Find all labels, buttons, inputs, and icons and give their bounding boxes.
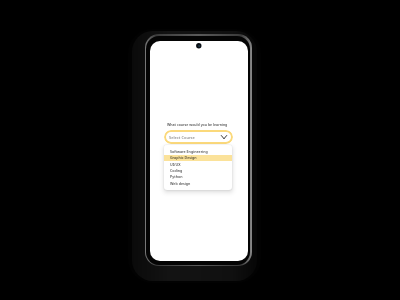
staticText: Software Engineering xyxy=(170,149,208,154)
button[interactable]: UI/UX xyxy=(164,162,232,169)
button[interactable]: Select Course xyxy=(164,130,233,144)
button[interactable]: Python xyxy=(164,174,232,181)
button[interactable]: Coding xyxy=(164,168,232,175)
button[interactable]: Graphic Design xyxy=(164,155,232,161)
button[interactable]: Software Engineering xyxy=(164,149,232,156)
staticText: Coding xyxy=(170,168,183,173)
staticText: Web design xyxy=(170,181,191,186)
staticText: Graphic Design xyxy=(170,155,197,160)
other: Expand xyxy=(220,133,228,141)
staticText: Select Course xyxy=(169,135,195,140)
button[interactable]: Web design xyxy=(164,181,232,188)
staticText: What course would you be learning xyxy=(167,122,228,127)
staticText: Python xyxy=(170,174,183,179)
staticText: UI/UX xyxy=(170,162,181,167)
